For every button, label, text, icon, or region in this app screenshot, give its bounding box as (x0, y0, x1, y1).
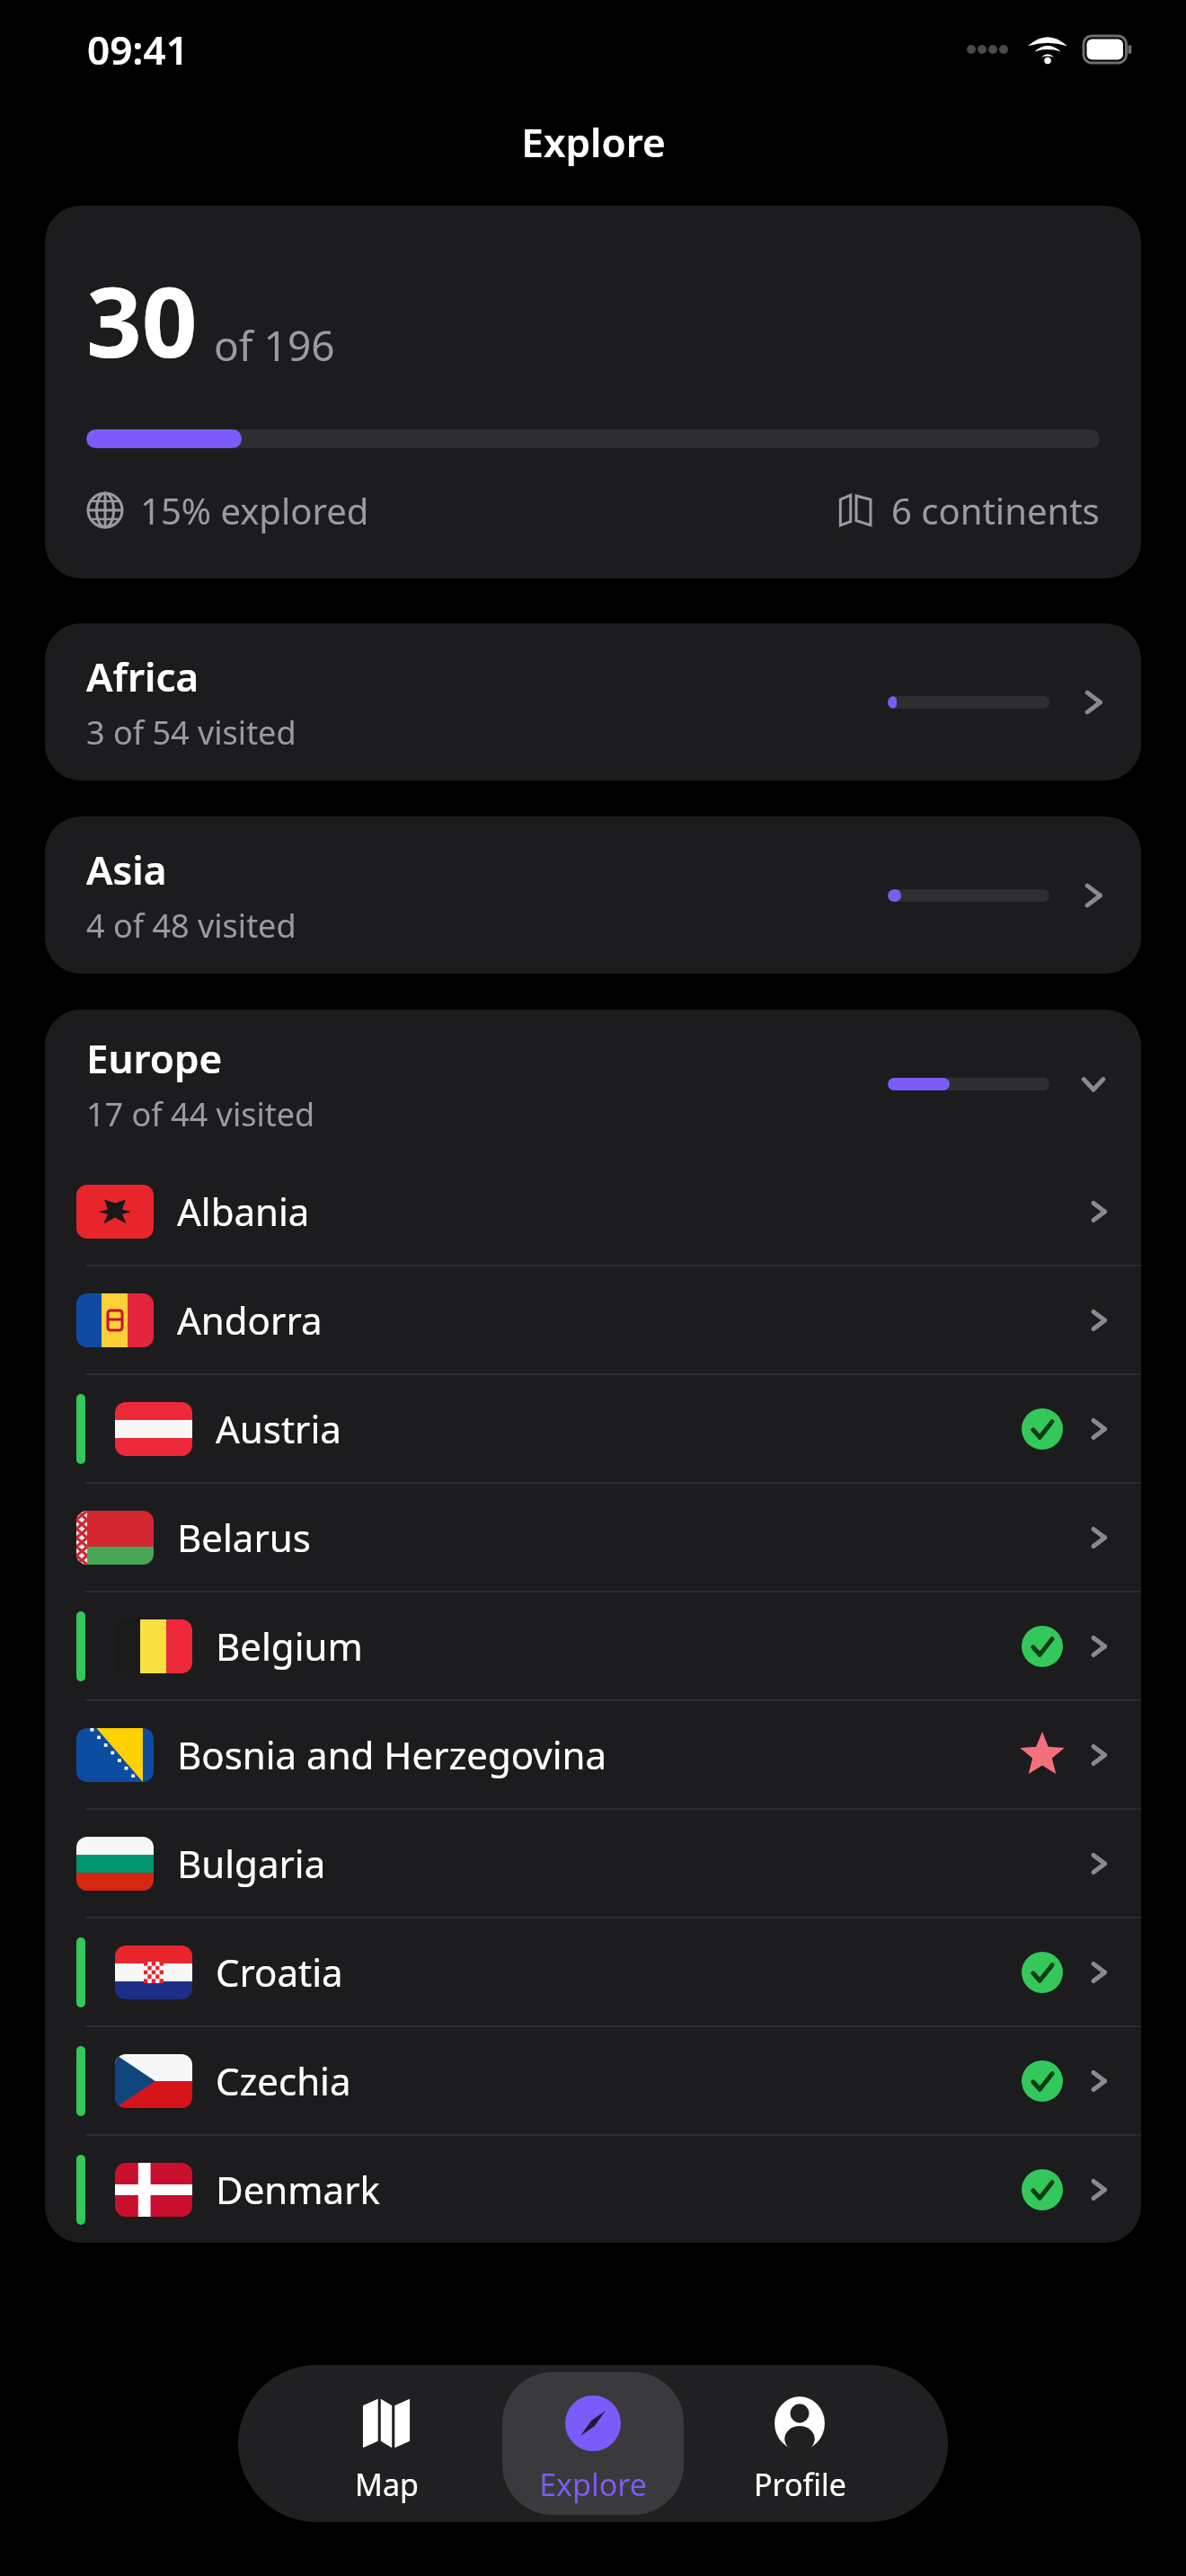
other: Explore (565, 2395, 621, 2451)
staticText: Asia (86, 842, 167, 896)
button[interactable]: Bulgaria (45, 1810, 1141, 1917)
button[interactable]: Belarus (45, 1484, 1141, 1591)
button[interactable]: Belgium (45, 1592, 1141, 1699)
button[interactable]: Map (296, 2372, 477, 2515)
button[interactable]: Croatia (45, 1919, 1141, 2025)
staticText: Denmark (216, 2164, 1022, 2215)
staticText: Africa (86, 649, 199, 703)
staticText: Croatia (216, 1946, 1022, 1998)
staticText: 4 of 48 visited (86, 904, 296, 948)
staticText: Bulgaria (177, 1838, 1022, 1889)
staticText: Europe (86, 1031, 223, 1085)
staticText: Albania (177, 1186, 1022, 1237)
button[interactable]: Andorra (45, 1266, 1141, 1373)
staticText: of 196 (214, 317, 335, 374)
button[interactable]: Profile (709, 2372, 890, 2515)
staticText: 6 continents (891, 486, 1100, 534)
staticText: Andorra (177, 1294, 1022, 1345)
staticText: Explore (521, 115, 666, 169)
button[interactable]: Denmark (45, 2136, 1141, 2243)
other: Map (358, 2395, 414, 2451)
button[interactable]: Explore (502, 2372, 684, 2515)
staticText: Belarus (177, 1512, 1022, 1563)
staticText: Czechia (216, 2055, 1022, 2106)
staticText: Map (355, 2464, 419, 2505)
button[interactable]: Austria (45, 1375, 1141, 1482)
staticText: 3 of 54 visited (86, 710, 296, 754)
button[interactable]: Europe (45, 1010, 1141, 1158)
staticText: Bosnia and Herzegovina (177, 1729, 1019, 1780)
staticText: 30 (86, 254, 198, 386)
staticText: Explore (539, 2464, 647, 2505)
button[interactable]: Africa (45, 623, 1141, 781)
staticText: Profile (754, 2464, 846, 2505)
button[interactable]: Albania (45, 1158, 1141, 1265)
staticText: Austria (216, 1403, 1022, 1454)
button[interactable]: Asia (45, 816, 1141, 974)
button[interactable]: Bosnia and Herzegovina (45, 1701, 1141, 1808)
staticText: 17 of 44 visited (86, 1092, 315, 1136)
button[interactable]: 30 (45, 206, 1141, 578)
staticText: 09:41 (87, 22, 189, 76)
staticText: 15% explored (140, 486, 369, 534)
button[interactable]: Czechia (45, 2027, 1141, 2134)
other: Profile (772, 2395, 828, 2451)
staticText: Belgium (216, 1620, 1022, 1672)
